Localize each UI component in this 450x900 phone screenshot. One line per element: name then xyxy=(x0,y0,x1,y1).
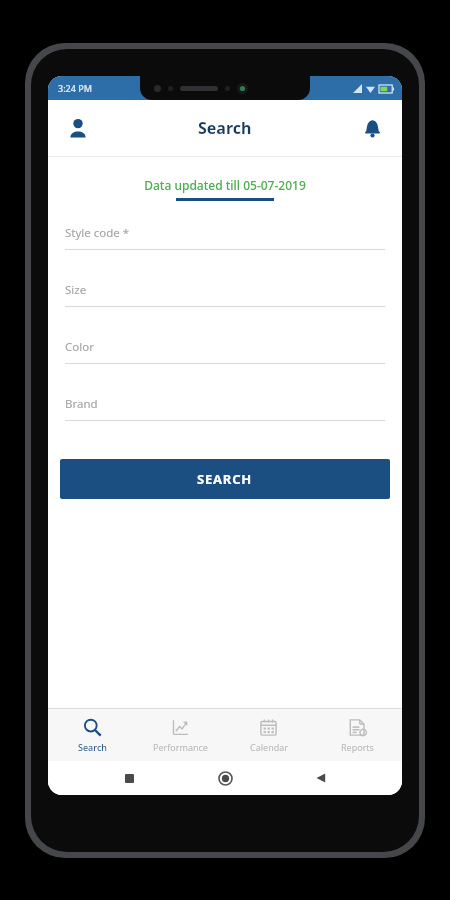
staticText: Search xyxy=(78,741,107,753)
button[interactable]: Calendar xyxy=(224,709,313,761)
button[interactable]: Size xyxy=(65,282,385,307)
staticText: Search xyxy=(198,117,252,139)
staticText: SEARCH xyxy=(197,470,253,488)
staticText: 3:24 PM xyxy=(58,82,92,94)
button[interactable]: Notifications xyxy=(350,106,394,150)
staticText: Performance xyxy=(153,741,208,753)
button[interactable]: SEARCH xyxy=(60,459,390,499)
button[interactable]: Home xyxy=(210,763,240,793)
button[interactable]: Brand xyxy=(65,396,385,421)
button[interactable]: Search xyxy=(48,709,136,761)
button[interactable]: Style code * xyxy=(65,225,385,250)
button[interactable]: Back xyxy=(306,763,336,793)
button[interactable]: Performance xyxy=(136,709,224,761)
button[interactable]: Color xyxy=(65,339,385,364)
staticText: Brand xyxy=(65,396,98,412)
staticText: Data updated till 05-07-2019 xyxy=(144,177,306,193)
button[interactable]: Reports xyxy=(313,709,402,761)
button[interactable]: Recent apps xyxy=(114,763,144,793)
staticText: Style code * xyxy=(65,225,130,241)
staticText: Calendar xyxy=(250,741,288,753)
staticText: Size xyxy=(65,282,87,298)
staticText: Color xyxy=(65,339,94,355)
staticText: Reports xyxy=(341,741,374,753)
button[interactable]: Profile xyxy=(56,106,100,150)
